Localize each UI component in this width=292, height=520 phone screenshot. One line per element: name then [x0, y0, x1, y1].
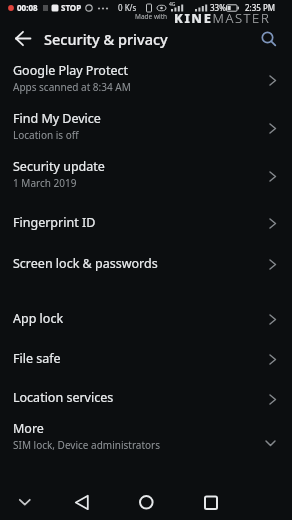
button[interactable]: Screen lock & passwords — [0, 244, 292, 285]
button[interactable] — [195, 488, 227, 520]
button[interactable]: App lock — [0, 299, 292, 339]
staticText: Google Play Protect — [13, 62, 128, 79]
staticText: Security update — [13, 158, 105, 175]
button[interactable]: Security update — [0, 152, 292, 200]
staticText: App lock — [13, 310, 64, 327]
staticText: Find My Device — [13, 110, 101, 127]
staticText: Security & privacy — [44, 29, 168, 49]
staticText: 33% — [210, 2, 226, 13]
staticText: Fingerprint ID — [13, 214, 96, 231]
button[interactable]: Location services — [0, 379, 292, 419]
button[interactable]: Find My Device — [0, 104, 292, 152]
staticText: Location services — [13, 389, 114, 406]
staticText: Screen lock & passwords — [13, 255, 158, 272]
staticText: File safe — [13, 350, 61, 367]
button[interactable] — [252, 18, 292, 58]
staticText: Location is off — [13, 128, 79, 142]
button[interactable] — [12, 494, 37, 510]
button[interactable] — [0, 18, 44, 58]
staticText: SIM lock, Device administrators — [13, 438, 161, 452]
button[interactable]: Google Play Protect — [0, 56, 292, 104]
button[interactable]: Fingerprint ID — [0, 203, 292, 244]
button[interactable]: File safe — [0, 339, 292, 379]
button[interactable] — [130, 488, 162, 520]
staticText: 0 K/s — [118, 2, 137, 13]
staticText: STOP — [61, 2, 82, 13]
staticText: 00:08 — [17, 2, 38, 13]
staticText: Made with — [135, 12, 168, 21]
staticText: More — [13, 420, 44, 437]
staticText: 2:35 PM — [245, 2, 276, 13]
staticText: 4G — [169, 1, 176, 8]
staticText: Apps scanned at 8:34 AM — [13, 80, 131, 94]
button[interactable]: More — [0, 419, 292, 467]
staticText: 1 March 2019 — [13, 176, 77, 190]
staticText: KINEMASTER — [174, 9, 271, 27]
button[interactable] — [66, 488, 98, 520]
